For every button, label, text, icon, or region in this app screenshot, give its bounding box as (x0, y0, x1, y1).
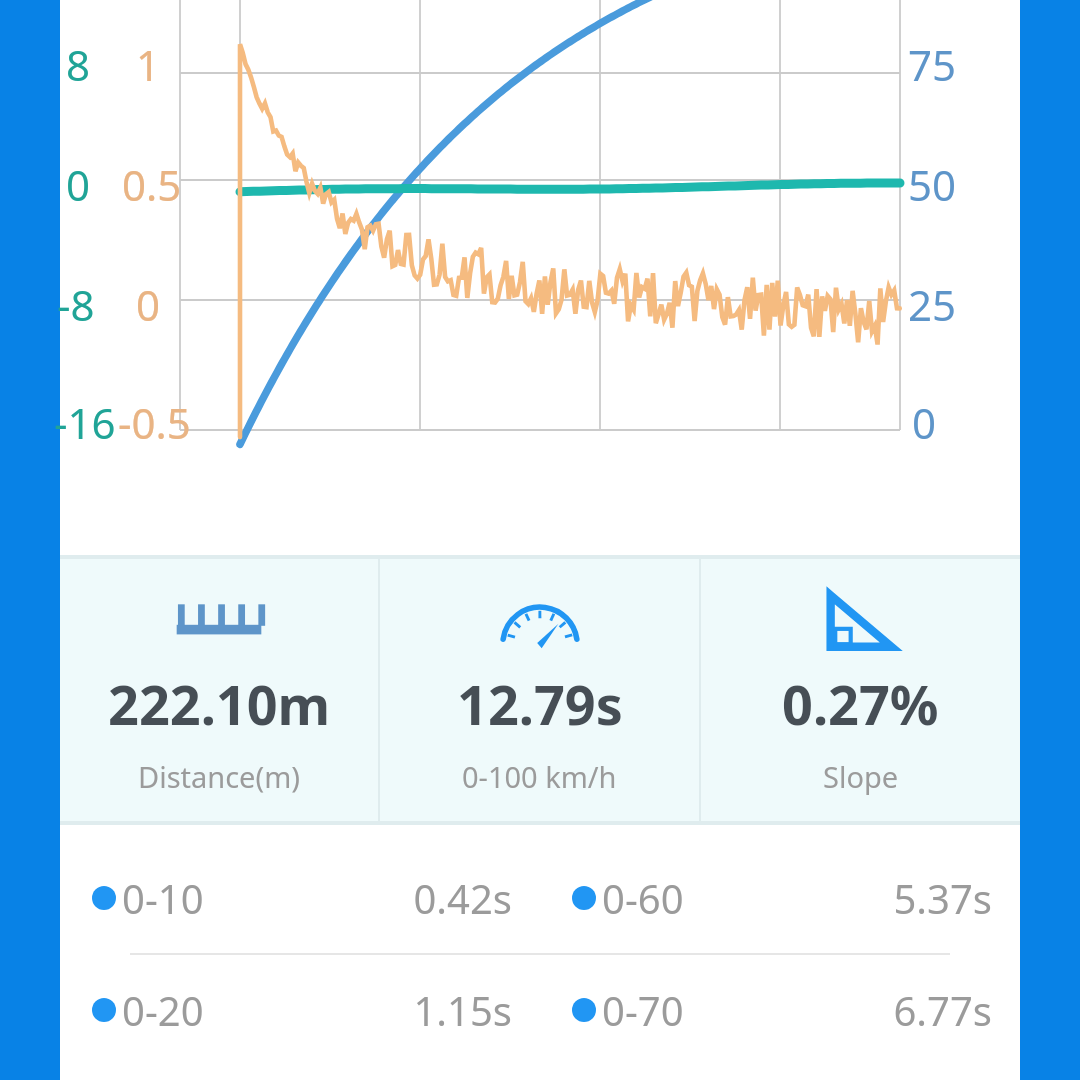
button[interactable]: 0-60 (540, 867, 1020, 929)
staticText: 0-20 (122, 983, 204, 1037)
staticText: Slope (823, 757, 899, 796)
staticText: -16 (54, 394, 116, 451)
staticText: 8 (66, 36, 91, 93)
button[interactable]: 0-70 (540, 979, 1020, 1041)
staticText: Distance(m) (138, 757, 300, 796)
staticText: 5.37s (893, 871, 992, 925)
staticText: 6.77s (893, 983, 992, 1037)
staticText: 75 (908, 36, 957, 93)
staticText: 0 (136, 276, 161, 333)
staticText: 0.42s (413, 871, 512, 925)
staticText: 0 (66, 156, 91, 213)
staticText: 50 (908, 156, 957, 213)
button[interactable]: 0-10 (60, 867, 540, 929)
button[interactable]: 0-20 (60, 979, 540, 1041)
staticText: 0.27% (782, 667, 939, 741)
button[interactable]: Slope (701, 555, 1020, 825)
staticText: -0.5 (118, 394, 191, 451)
staticText: 0-70 (602, 983, 684, 1037)
staticText: 0-100 km/h (462, 757, 617, 796)
staticText: 0 (912, 394, 937, 451)
staticText: 12.79s (457, 667, 623, 741)
staticText: -8 (57, 276, 95, 333)
staticText: 0-10 (122, 871, 204, 925)
button[interactable]: Distance (60, 555, 378, 825)
staticText: 0-60 (602, 871, 684, 925)
staticText: 222.10m (108, 667, 331, 741)
staticText: 1.15s (413, 983, 512, 1037)
staticText: 0.5 (122, 156, 182, 213)
button[interactable]: Acceleration (380, 555, 699, 825)
staticText: 25 (908, 276, 957, 333)
staticText: 1 (136, 36, 161, 93)
